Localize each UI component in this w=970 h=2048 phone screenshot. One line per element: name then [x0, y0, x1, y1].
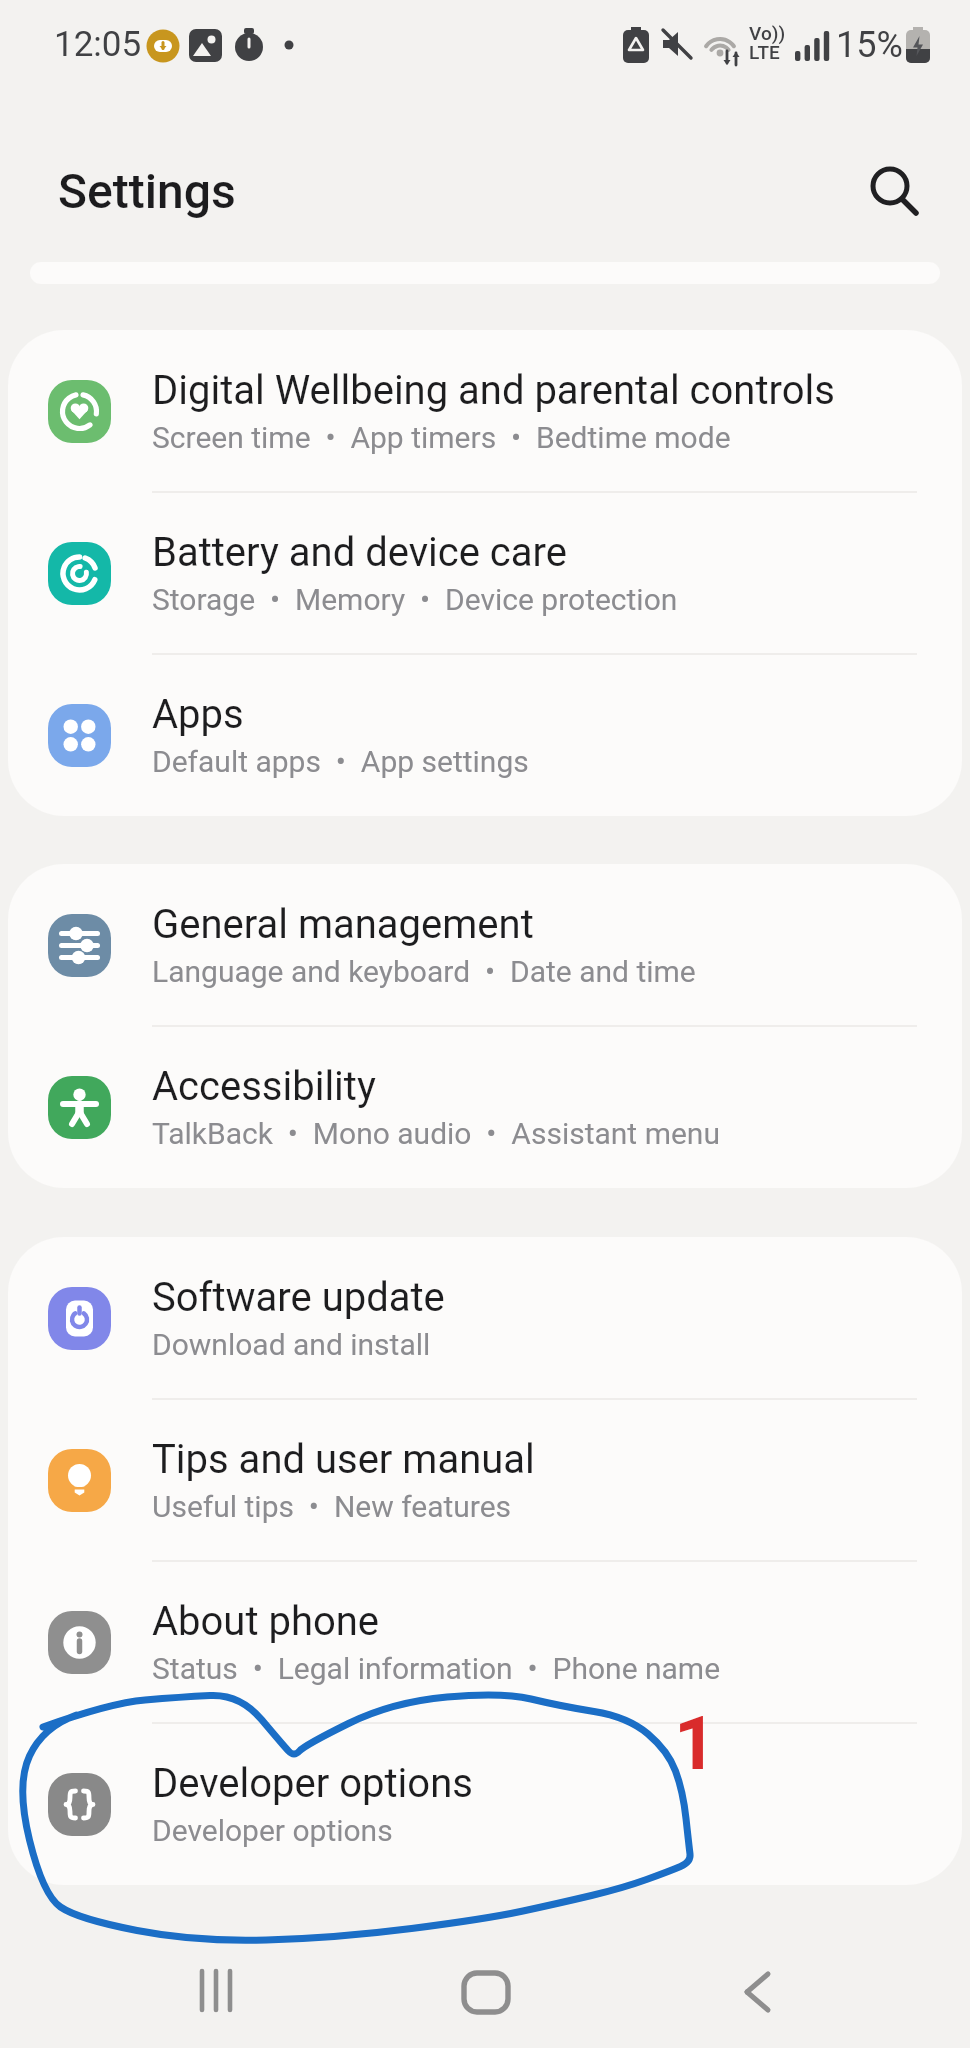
button[interactable] [450, 1950, 522, 2022]
button[interactable]: Tips and user manual [8, 1399, 962, 1561]
staticText: Useful tips • New features [152, 1489, 512, 1524]
staticText: Language and keyboard • Date and time [152, 954, 696, 989]
button[interactable]: Accessibility [8, 1026, 962, 1188]
staticText: Screen time • App timers • Bedtime mode [152, 420, 731, 455]
button[interactable]: Digital Wellbeing and parental controls [8, 330, 962, 492]
button[interactable]: Developer options [8, 1723, 962, 1885]
staticText: Download and install [152, 1327, 431, 1362]
button[interactable] [852, 148, 936, 232]
staticText: General management [152, 901, 534, 948]
button[interactable]: Apps [8, 654, 962, 816]
button[interactable]: About phone [8, 1561, 962, 1723]
staticText: Digital Wellbeing and parental controls [152, 367, 835, 414]
staticText: Vo)) [749, 22, 786, 44]
staticText: Tips and user manual [152, 1436, 535, 1483]
staticText: Storage • Memory • Device protection [152, 582, 678, 617]
staticText: About phone [152, 1598, 380, 1645]
staticText: Developer options [152, 1760, 473, 1807]
button[interactable] [722, 1950, 794, 2022]
staticText: Apps [152, 691, 244, 738]
staticText: Developer options [152, 1813, 393, 1848]
staticText: Status • Legal information • Phone name [152, 1651, 721, 1686]
staticText: Accessibility [152, 1063, 376, 1110]
staticText: LTE [749, 41, 780, 63]
staticText: Default apps • App settings [152, 744, 529, 779]
staticText: Settings [58, 163, 236, 219]
staticText: Software update [152, 1274, 445, 1321]
staticText: 15% [836, 24, 903, 66]
button[interactable]: Software update [8, 1237, 962, 1399]
staticText: 12:05 [54, 24, 142, 65]
staticText: Battery and device care [152, 529, 567, 576]
button[interactable]: General management [8, 864, 962, 1026]
button[interactable]: Battery and device care [8, 492, 962, 654]
button[interactable] [179, 1950, 251, 2022]
staticText: TalkBack • Mono audio • Assistant menu [152, 1116, 720, 1151]
staticText: 1 [674, 1700, 717, 1787]
